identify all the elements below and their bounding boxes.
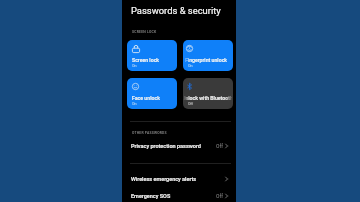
staticText: Unlock with Bluetooth (183, 95, 232, 101)
staticText: Screen lock (132, 57, 160, 63)
button[interactable]: Screen lock (127, 40, 177, 71)
button[interactable]: Fingerprint unlock (183, 40, 233, 71)
staticText: Wireless emergency alerts (131, 176, 225, 182)
staticText: Emergency SOS (131, 193, 216, 199)
staticText: On (132, 64, 137, 68)
button[interactable]: Emergency SOS (122, 189, 236, 202)
staticText: Off (188, 102, 194, 106)
staticText: Fingerprint unlock (185, 57, 228, 63)
staticText: OTHER PASSWORDS (132, 131, 167, 135)
staticText: Passwords & security (131, 5, 221, 16)
staticText: Off (216, 193, 223, 199)
button[interactable]: Wireless emergency alerts (122, 172, 236, 186)
staticText: Off (216, 143, 223, 149)
button[interactable]: Privacy protection password (122, 139, 236, 153)
button[interactable]: Face unlock (127, 78, 177, 109)
staticText: On (132, 102, 137, 106)
staticText: On (188, 64, 193, 68)
staticText: Face unlock (132, 95, 160, 101)
staticText: Privacy protection password (131, 143, 216, 149)
button[interactable]: Unlock with Bluetooth (183, 78, 233, 109)
staticText: SCREEN LOCK (132, 30, 157, 34)
